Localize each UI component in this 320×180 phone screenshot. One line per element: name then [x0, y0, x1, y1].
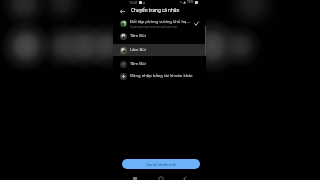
staticText: Đổi tập phòng vương khổ hạnh se...: [130, 19, 192, 25]
button[interactable]: Tâm Bùi: [113, 30, 206, 42]
staticText: 10:41: [129, 0, 138, 5]
button[interactable]: Back: [118, 7, 127, 16]
staticText: Tâm Bùi: [130, 33, 146, 39]
button[interactable]: Đổi tập phòng vương khổ hạnh se...: [113, 17, 206, 30]
staticText: Chuyển trang cá nhân: [131, 7, 180, 13]
button[interactable]: Tâm Bùi: [113, 58, 206, 70]
button[interactable]: Home: [158, 174, 164, 180]
staticText: Tâm Bùi: [130, 61, 146, 67]
staticText: 76%: [187, 0, 194, 4]
button[interactable]: Lâm Bùi: [113, 44, 206, 56]
button[interactable]: Tạo tài khoản mới: [122, 159, 200, 169]
button[interactable]: Recent apps: [132, 174, 138, 180]
staticText: hpsamepmkpeenktsamqxlesanmqe: [130, 25, 178, 29]
staticText: Lâm Bùi: [130, 47, 146, 53]
button[interactable]: Back: [182, 174, 188, 180]
button[interactable]: Đăng nhập bằng tài khoản khác: [113, 70, 206, 82]
staticText: Tạo tài khoản mới: [146, 162, 176, 167]
staticText: Đăng nhập bằng tài khoản khác: [130, 73, 193, 79]
